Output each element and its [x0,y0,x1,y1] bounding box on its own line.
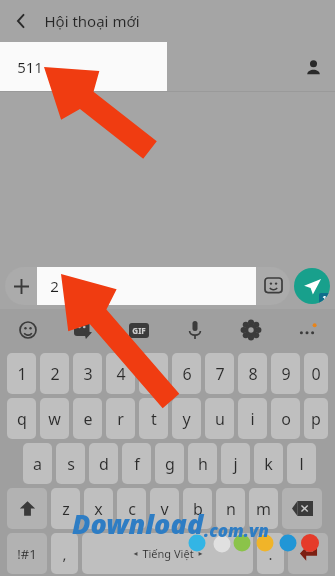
staticText: e [83,408,93,430]
staticText: Tiếng Việt [142,546,194,561]
button[interactable]: 511 [0,42,167,92]
staticText: t [151,408,157,430]
button[interactable]: o [271,398,300,439]
staticText: 3 [83,363,93,385]
button[interactable]: 9 [271,353,300,394]
button[interactable]: 2 [37,267,256,305]
staticText: Hội thoại mới [44,11,140,31]
button[interactable]: z [51,488,80,529]
button[interactable]: Space [82,533,253,574]
button[interactable]: Stickers [55,309,111,351]
staticText: ◂ [133,549,138,558]
button[interactable]: x [84,488,113,529]
staticText: p [311,408,321,430]
button[interactable]: t [139,398,168,439]
staticText: 1 [322,294,327,304]
button[interactable]: 8 [238,353,267,394]
staticText: .com.vn [204,519,269,542]
staticText: s [67,453,75,475]
button[interactable]: . [257,533,284,574]
button[interactable]: e [73,398,102,439]
staticText: Download [72,505,204,542]
button[interactable]: d [89,443,118,484]
button[interactable]: 2 [40,353,69,394]
staticText: a [33,453,42,475]
staticText: 0 [311,363,321,385]
staticText: h [198,453,208,475]
staticText: 2 [50,363,60,385]
button[interactable] [7,488,47,529]
staticText: 9 [281,363,291,385]
staticText: 4 [116,363,126,385]
button[interactable]: 1 [7,353,36,394]
staticText: z [62,498,70,520]
staticText: , [62,544,67,564]
staticText: w [48,408,61,430]
button[interactable]: m [249,488,278,529]
button[interactable]: u [205,398,234,439]
button[interactable]: b [183,488,212,529]
button[interactable]: w [40,398,69,439]
button[interactable]: p [304,398,328,439]
staticText: 1 [17,363,27,385]
button[interactable]: Settings [223,309,279,351]
staticText: 6 [182,363,192,385]
staticText: !#1 [17,545,37,563]
staticText: x [94,498,103,520]
button[interactable]: 3 [73,353,102,394]
staticText: 5 [149,363,159,385]
button[interactable]: Stickers [256,269,290,303]
button[interactable]: a [23,443,52,484]
button[interactable]: GIF [111,309,167,351]
button[interactable]: Back [0,0,42,42]
staticText: GIF [132,325,146,336]
staticText: n [226,498,236,520]
button[interactable]: v [150,488,179,529]
button[interactable]: 0 [304,353,328,394]
button[interactable]: l [287,443,316,484]
staticText: f [134,453,140,475]
button[interactable]: r [106,398,135,439]
button[interactable] [282,488,322,529]
button[interactable]: Contacts [291,45,335,89]
staticText: c [128,498,136,520]
button[interactable]: Send [294,268,330,304]
staticText: 2 [50,276,59,296]
staticText: q [17,408,27,430]
button[interactable]: !#1 [7,533,47,574]
button[interactable]: 6 [172,353,201,394]
staticText: v [160,498,169,520]
button[interactable]: More [279,309,335,351]
button[interactable] [288,533,328,574]
button[interactable]: q [7,398,36,439]
staticText: o [281,408,291,430]
button[interactable]: j [221,443,250,484]
button[interactable]: y [172,398,201,439]
button[interactable]: Emoji [0,309,55,351]
button[interactable]: Add attachment [5,270,37,302]
button[interactable]: k [254,443,283,484]
staticText: j [233,453,238,475]
staticText: 7 [215,363,225,385]
button[interactable]: 7 [205,353,234,394]
staticText: 8 [248,363,258,385]
button[interactable]: Voice input [167,309,223,351]
button[interactable]: n [216,488,245,529]
staticText: m [256,498,271,520]
button[interactable]: g [155,443,184,484]
button[interactable]: h [188,443,217,484]
staticText: 511 [17,57,43,77]
button[interactable]: s [56,443,85,484]
staticText: y [182,408,191,430]
staticText: ▸ [198,549,203,558]
button[interactable]: 4 [106,353,135,394]
button[interactable]: c [117,488,146,529]
staticText: d [99,453,109,475]
staticText: g [165,453,175,475]
button[interactable]: 5 [139,353,168,394]
button[interactable]: , [51,533,78,574]
button[interactable]: i [238,398,267,439]
button[interactable]: f [122,443,151,484]
staticText: r [117,408,124,430]
staticText: b [193,498,203,520]
